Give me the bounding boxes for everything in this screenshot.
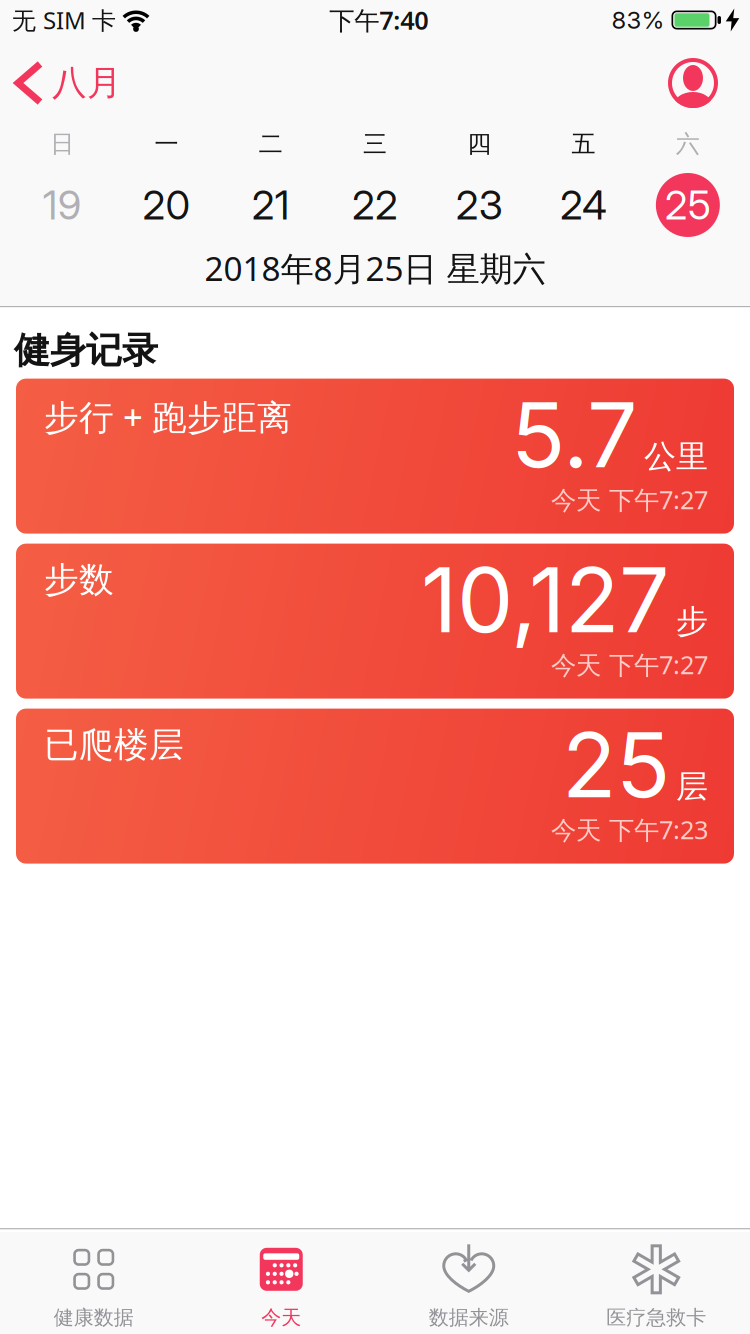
staticText: 今天 下午7:27 [551, 648, 708, 681]
button[interactable]: 已爬楼层 [16, 709, 734, 864]
staticText: 健身记录 [14, 328, 158, 373]
staticText: 日 [50, 129, 74, 159]
staticText: 21 [252, 181, 290, 229]
staticText: 公里 [644, 437, 708, 476]
button[interactable]: 24 [531, 181, 636, 229]
staticText: 医疗急救卡 [606, 1305, 706, 1330]
staticText: 5.7 [511, 381, 638, 489]
staticText: 下午7:40 [329, 3, 428, 37]
staticText: 无 SIM 卡 [12, 4, 116, 36]
staticText: 83% [611, 5, 664, 34]
button[interactable]: 25 [636, 173, 740, 237]
button[interactable]: 健康数据 [0, 1229, 187, 1330]
staticText: 今天 下午7:27 [551, 483, 708, 516]
staticText: 层 [676, 767, 708, 806]
staticText: 步行 + 跑步距离 [44, 394, 292, 440]
button[interactable]: 今天 [187, 1229, 375, 1330]
staticText: 健康数据 [54, 1305, 134, 1330]
staticText: 二 [259, 129, 283, 159]
button[interactable]: 21 [219, 181, 323, 229]
staticText: 10,127 [421, 546, 670, 654]
button[interactable]: 19 [10, 181, 114, 229]
button[interactable]: 22 [323, 181, 427, 229]
staticText: 今天 [261, 1305, 301, 1330]
staticText: 数据来源 [429, 1305, 509, 1330]
staticText: 五 [572, 129, 596, 159]
staticText: 步 [676, 602, 708, 641]
staticText: 23 [456, 181, 503, 229]
staticText: 25 [562, 711, 670, 819]
staticText: 已爬楼层 [44, 724, 184, 766]
staticText: 六 [676, 129, 700, 159]
staticText: 2018年8月25日 星期六 [204, 246, 545, 290]
staticText: 19 [43, 181, 82, 229]
button[interactable]: 步行 + 跑步距离 [16, 379, 734, 534]
staticText: 今天 下午7:23 [551, 813, 708, 846]
staticText: 25 [665, 181, 711, 229]
button[interactable]: 20 [114, 181, 219, 229]
staticText: 三 [363, 129, 387, 159]
staticText: 一 [154, 129, 178, 159]
staticText: 22 [352, 181, 398, 229]
button[interactable]: 23 [427, 181, 531, 229]
button[interactable]: 医疗急救卡 [562, 1229, 750, 1330]
staticText: 20 [142, 181, 190, 229]
button[interactable]: 八月 [18, 62, 122, 104]
button[interactable]: 数据来源 [375, 1229, 562, 1330]
staticText: 步数 [44, 559, 114, 601]
staticText: 八月 [52, 62, 122, 104]
staticText: 四 [467, 129, 491, 159]
staticText: 24 [560, 181, 607, 229]
button[interactable]: Profile [668, 58, 718, 108]
button[interactable]: 步数 [16, 544, 734, 699]
